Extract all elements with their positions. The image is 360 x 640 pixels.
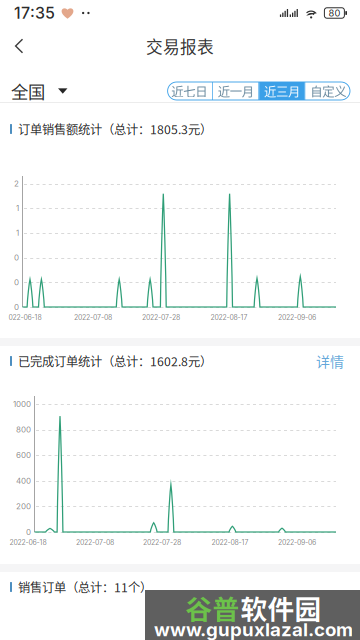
staticText: 1000: [13, 399, 31, 409]
staticText: 全国: [11, 78, 45, 104]
staticText: 自定义: [310, 82, 346, 100]
staticText: 0: [14, 253, 19, 262]
staticText: 近七日: [171, 82, 207, 100]
staticText: 详情: [316, 351, 344, 371]
staticText: 2022-07-28: [142, 313, 180, 322]
staticText: 2022-09-06: [278, 313, 316, 322]
button[interactable]: 全国: [0, 70, 77, 112]
staticText: 2022-06-18: [9, 538, 46, 547]
staticText: 600: [16, 450, 31, 460]
staticText: 已完成订单统计（总计：1602.8元）: [18, 352, 212, 370]
button[interactable]: 近七日: [167, 82, 212, 100]
staticText: 80: [328, 7, 340, 19]
staticText: 0: [26, 527, 31, 537]
staticText: www.gupuxlazal.com: [154, 618, 353, 640]
staticText: 软件园: [240, 588, 321, 627]
staticText: 订单销售额统计（总计：1805.3元）: [18, 120, 212, 138]
staticText: 200: [16, 502, 31, 511]
staticText: 2022-07-28: [143, 538, 181, 547]
staticText: 2022-07-08: [74, 313, 112, 322]
staticText: 1: [16, 203, 19, 213]
staticText: 17:35: [14, 3, 55, 23]
staticText: 2022-07-08: [76, 538, 114, 547]
staticText: 2022-09-06: [278, 538, 316, 547]
button[interactable]: 近三月: [259, 82, 305, 100]
staticText: 0: [14, 302, 19, 312]
staticText: 交易报表: [146, 34, 214, 58]
staticText: 022-06-18: [8, 313, 41, 322]
button[interactable]: 返回: [0, 28, 38, 64]
staticText: 谷普: [185, 588, 239, 627]
staticText: 2022-08-17: [211, 538, 248, 547]
staticText: 销售订单（总计：11个）: [18, 578, 152, 596]
staticText: 近三月: [264, 82, 300, 100]
staticText: 0: [14, 277, 19, 287]
button[interactable]: 自定义: [305, 82, 351, 100]
staticText: 800: [16, 425, 31, 434]
staticText: 2: [14, 179, 19, 188]
staticText: 近一月: [218, 82, 254, 100]
button[interactable]: 详情: [313, 348, 347, 374]
button[interactable]: 近一月: [213, 82, 258, 100]
staticText: 2022-08-17: [210, 313, 247, 322]
staticText: 400: [16, 476, 31, 486]
staticText: 1: [16, 228, 19, 238]
